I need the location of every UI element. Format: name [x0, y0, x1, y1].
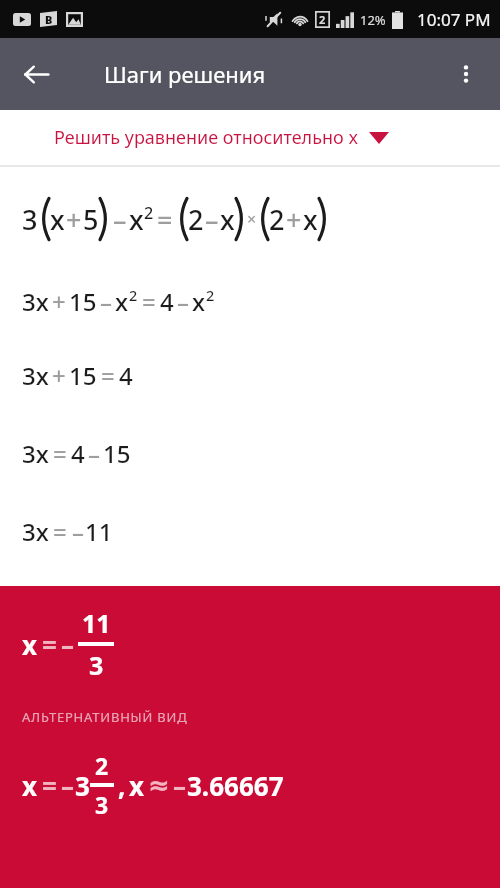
staticText: 4 — [119, 359, 133, 392]
staticText: 2 — [319, 12, 326, 27]
staticText: x — [115, 285, 129, 318]
staticText: – — [177, 285, 189, 318]
staticText: x — [22, 627, 38, 662]
staticText: 11 — [82, 606, 111, 640]
staticText: x — [303, 201, 318, 238]
staticText: = — [101, 359, 115, 392]
staticText: 3 — [22, 201, 38, 238]
staticText: = — [42, 768, 57, 803]
staticText: 12% — [360, 11, 386, 29]
staticText: 3.66667 — [187, 768, 284, 803]
staticText: = — [53, 437, 67, 470]
staticText: B — [45, 12, 53, 27]
staticText: – — [61, 627, 75, 662]
staticText: x — [129, 201, 144, 238]
staticText: = — [157, 201, 173, 238]
staticText: × — [247, 208, 257, 230]
staticText: – — [100, 285, 112, 318]
staticText: – — [88, 437, 100, 470]
staticText: 2 — [206, 286, 215, 306]
staticText: 15 — [103, 437, 131, 470]
staticText: – — [205, 201, 219, 238]
staticText: АЛЬТЕРНАТИВНЫЙ ВИД — [22, 708, 188, 726]
staticText: + — [286, 201, 302, 238]
staticText: 2 — [269, 201, 285, 238]
button[interactable]: Back — [8, 46, 64, 102]
staticText: + — [52, 285, 66, 318]
staticText: 3 — [89, 648, 104, 682]
staticText: – — [61, 768, 75, 803]
staticText: = — [53, 515, 67, 548]
staticText: x — [50, 201, 65, 238]
staticText: 10:07 PM — [417, 8, 491, 31]
staticText: 2 — [188, 201, 204, 238]
staticText: , — [118, 768, 126, 803]
staticText: + — [66, 201, 82, 238]
staticText: 15 — [69, 285, 97, 318]
staticText: x — [129, 768, 145, 803]
staticText: – — [113, 201, 127, 238]
staticText: 2 — [129, 286, 138, 306]
staticText: 5 — [83, 201, 99, 238]
staticText: = — [142, 285, 156, 318]
staticText: Решить уравнение относительно x — [54, 125, 358, 150]
staticText: 3 — [95, 789, 109, 820]
staticText: x — [22, 768, 38, 803]
staticText: 3x — [22, 515, 49, 548]
staticText: 4 — [71, 437, 85, 470]
staticText: 2 — [144, 202, 154, 224]
staticText: + — [52, 359, 66, 392]
staticText: = — [42, 627, 57, 662]
staticText: – — [72, 515, 84, 548]
staticText: 15 — [69, 359, 97, 392]
staticText: 3x — [22, 359, 49, 392]
staticText: 11 — [85, 515, 113, 548]
staticText: 2 — [95, 750, 109, 781]
button[interactable]: Решить уравнение относительно x — [0, 110, 500, 165]
staticText: ≈ — [148, 770, 170, 800]
staticText: 3x — [22, 285, 49, 318]
staticText: x — [220, 201, 235, 238]
staticText: 3 — [75, 768, 90, 803]
staticText: – — [173, 768, 187, 803]
staticText: x — [192, 285, 206, 318]
staticText: 4 — [160, 285, 174, 318]
staticText: Шаги решения — [104, 59, 266, 89]
staticText: 3x — [22, 437, 49, 470]
button[interactable]: More options — [438, 46, 494, 102]
